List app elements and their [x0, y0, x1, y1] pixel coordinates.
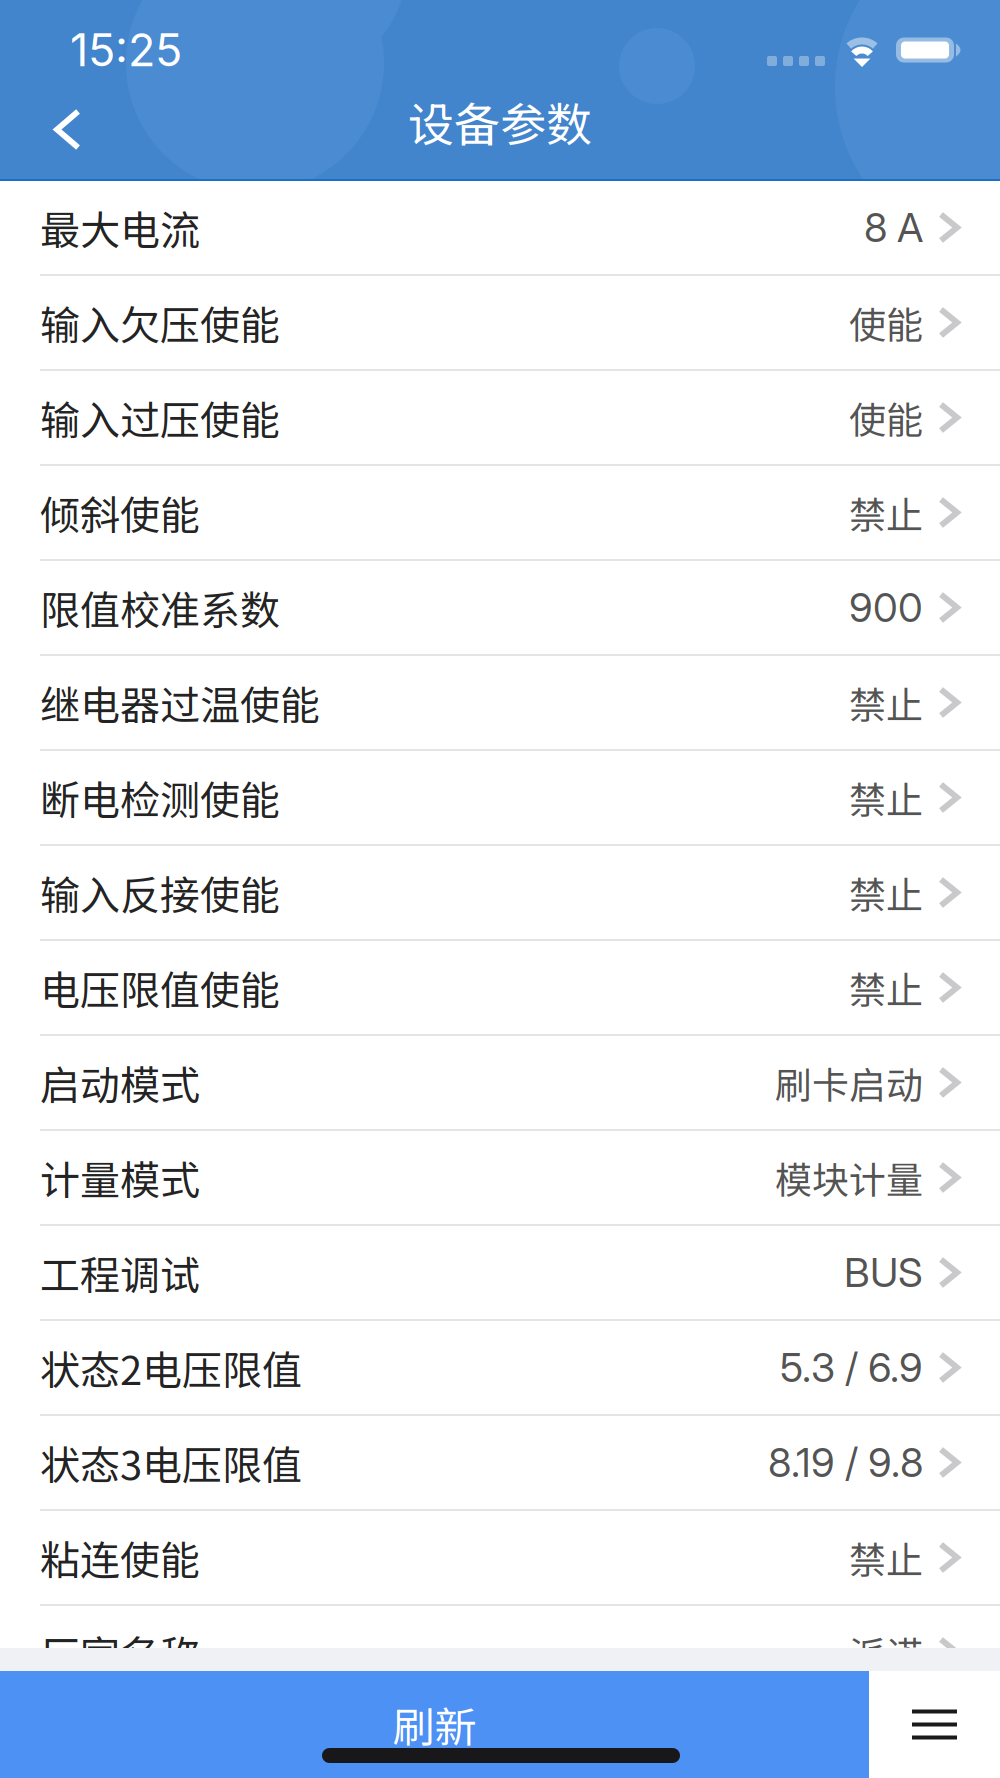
button[interactable]: Menu [869, 1671, 1000, 1778]
button[interactable]: 电压限值使能 [0, 941, 1000, 1036]
button[interactable]: 状态2电压限值 [0, 1321, 1000, 1416]
staticText: 900 [849, 583, 923, 632]
staticText: 5.3 / 6.9 [780, 1343, 923, 1392]
button[interactable]: 断电检测使能 [0, 751, 1000, 846]
button[interactable]: 厂家名称 [0, 1606, 1000, 1701]
staticText: 禁止 [849, 866, 923, 919]
staticText: 输入过压使能 [40, 388, 280, 446]
button[interactable]: 输入过压使能 [0, 371, 1000, 466]
button[interactable]: 输入欠压使能 [0, 276, 1000, 371]
staticText: 倾斜使能 [40, 483, 200, 541]
staticText: 工程调试 [40, 1243, 200, 1301]
staticText: 输入欠压使能 [40, 293, 280, 351]
staticText: 电压限值使能 [40, 958, 280, 1016]
staticText: 设备参数 [408, 88, 592, 155]
staticText: 最大电流 [40, 198, 200, 256]
staticText: 刷新 [392, 1694, 476, 1755]
button[interactable]: 倾斜使能 [0, 466, 1000, 561]
button[interactable]: 输入反接使能 [0, 846, 1000, 941]
staticText: 刷卡启动 [775, 1056, 923, 1109]
button[interactable]: 状态3电压限值 [0, 1416, 1000, 1511]
staticText: 模块计量 [775, 1151, 923, 1204]
staticText: BUS [844, 1248, 923, 1297]
button[interactable]: 计量模式 [0, 1131, 1000, 1226]
staticText: 派诺 [849, 1626, 923, 1679]
staticText: 状态3电压限值 [40, 1433, 302, 1491]
staticText: 禁止 [849, 676, 923, 729]
staticText: 输入反接使能 [40, 863, 280, 921]
button[interactable]: 启动模式 [0, 1036, 1000, 1131]
button[interactable]: 工程调试 [0, 1226, 1000, 1321]
staticText: 厂家名称 [40, 1623, 200, 1681]
staticText: 8.19 / 9.8 [768, 1438, 923, 1487]
staticText: 启动模式 [40, 1053, 200, 1111]
button[interactable]: Back [0, 100, 117, 178]
button[interactable]: 继电器过温使能 [0, 656, 1000, 751]
staticText: 使能 [849, 296, 923, 349]
button[interactable]: 限值校准系数 [0, 561, 1000, 656]
button[interactable]: 粘连使能 [0, 1511, 1000, 1606]
staticText: 限值校准系数 [40, 578, 280, 636]
staticText: 禁止 [849, 771, 923, 824]
staticText: 状态2电压限值 [40, 1338, 302, 1396]
staticText: 禁止 [849, 486, 923, 539]
button[interactable]: 刷新 [0, 1671, 869, 1778]
staticText: 使能 [849, 391, 923, 444]
staticText: 禁止 [849, 961, 923, 1014]
staticText: 断电检测使能 [40, 768, 280, 826]
staticText: 15:25 [70, 23, 182, 77]
staticText: 继电器过温使能 [40, 673, 320, 731]
button[interactable]: 最大电流 [0, 181, 1000, 276]
staticText: 禁止 [849, 1531, 923, 1584]
staticText: 8 A [864, 203, 923, 252]
staticText: 粘连使能 [40, 1528, 200, 1586]
staticText: 计量模式 [40, 1148, 200, 1206]
